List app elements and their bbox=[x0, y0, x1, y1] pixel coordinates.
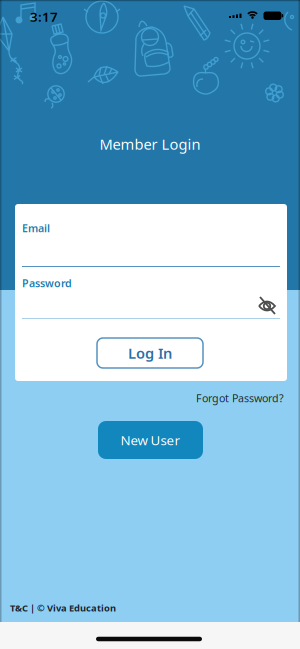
button[interactable]: Forgot Password? bbox=[196, 391, 284, 405]
staticText: Forgot Password? bbox=[196, 391, 284, 405]
staticText: T&C | © Viva Education bbox=[10, 602, 116, 614]
button[interactable] bbox=[22, 291, 280, 317]
staticText: Email bbox=[22, 221, 50, 235]
staticText: Password bbox=[22, 276, 72, 290]
button[interactable]: New User bbox=[98, 421, 203, 459]
staticText: Log In bbox=[128, 343, 172, 363]
staticText: 3:17 bbox=[30, 8, 58, 25]
button[interactable]: Log In bbox=[97, 338, 203, 368]
button[interactable] bbox=[255, 296, 279, 316]
staticText: New User bbox=[120, 431, 180, 449]
staticText: Member Login bbox=[99, 134, 200, 154]
